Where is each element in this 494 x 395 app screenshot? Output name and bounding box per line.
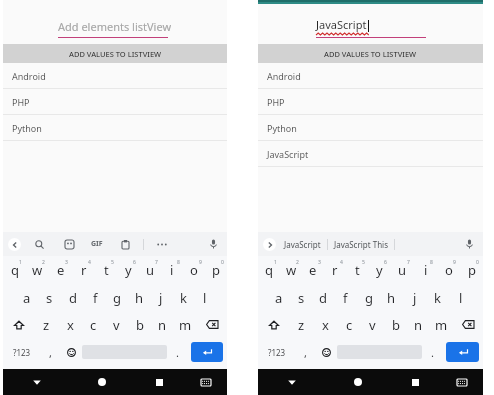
button[interactable]: b bbox=[384, 311, 407, 338]
button[interactable]: Python bbox=[258, 115, 483, 141]
button[interactable]: Backspace bbox=[197, 311, 227, 338]
button[interactable]: b bbox=[128, 311, 151, 338]
button[interactable]: JavaScript bbox=[284, 239, 321, 250]
button[interactable]: Back bbox=[258, 369, 326, 395]
button[interactable]: Enter bbox=[191, 342, 223, 362]
button[interactable]: d bbox=[312, 284, 334, 311]
button[interactable]: z bbox=[34, 311, 58, 338]
button[interactable]: r bbox=[72, 256, 95, 284]
button[interactable]: Python bbox=[3, 115, 227, 141]
button[interactable]: m bbox=[430, 311, 453, 338]
button[interactable]: Stickers bbox=[61, 236, 77, 252]
button[interactable]: x bbox=[58, 311, 82, 338]
button[interactable]: GIF bbox=[91, 239, 103, 249]
button[interactable]: j bbox=[403, 284, 426, 311]
button[interactable]: y bbox=[368, 256, 391, 284]
button[interactable]: Backspace bbox=[453, 311, 483, 338]
button[interactable]: Recents bbox=[133, 369, 185, 395]
button[interactable]: k bbox=[172, 284, 194, 311]
button[interactable]: Search bbox=[31, 236, 47, 252]
button[interactable]: Back bbox=[3, 369, 70, 395]
button[interactable]: c bbox=[337, 311, 361, 338]
button[interactable]: Shift bbox=[3, 311, 34, 338]
button[interactable]: n bbox=[151, 311, 174, 338]
button[interactable]: Clipboard bbox=[117, 236, 133, 252]
button[interactable]: w bbox=[26, 256, 49, 284]
button[interactable]: Android bbox=[258, 63, 483, 89]
button[interactable]: , bbox=[295, 338, 315, 366]
button[interactable]: p bbox=[460, 256, 483, 284]
button[interactable]: a bbox=[15, 284, 38, 311]
button[interactable]: Back bbox=[8, 238, 21, 251]
button[interactable]: l bbox=[194, 284, 216, 311]
button[interactable]: v bbox=[105, 311, 128, 338]
button[interactable]: s bbox=[290, 284, 312, 311]
button[interactable]: PHP bbox=[3, 89, 227, 115]
button[interactable]: a bbox=[268, 284, 290, 311]
button[interactable]: i bbox=[414, 256, 437, 284]
button[interactable]: g bbox=[357, 284, 380, 311]
button[interactable]: z bbox=[289, 311, 313, 338]
button[interactable]: JavaScript bbox=[258, 141, 483, 167]
button[interactable]: p bbox=[205, 256, 227, 284]
button[interactable]: Shift bbox=[258, 311, 289, 338]
button[interactable]: c bbox=[82, 311, 105, 338]
button[interactable]: Voice input bbox=[205, 236, 221, 252]
button[interactable]: Android bbox=[3, 63, 227, 89]
button[interactable]: Emoji bbox=[60, 338, 82, 366]
button[interactable]: e bbox=[302, 256, 324, 284]
button[interactable]: d bbox=[61, 284, 84, 311]
button[interactable]: h bbox=[128, 284, 150, 311]
button[interactable]: f bbox=[334, 284, 357, 311]
button[interactable]: s bbox=[38, 284, 61, 311]
button[interactable]: e bbox=[49, 256, 72, 284]
staticText: h bbox=[135, 289, 144, 307]
button[interactable]: t bbox=[346, 256, 368, 284]
button[interactable]: Home bbox=[70, 369, 133, 395]
button[interactable]: More options bbox=[154, 236, 170, 252]
button[interactable]: Keyboard bbox=[185, 369, 227, 395]
button[interactable]: k bbox=[426, 284, 449, 311]
button[interactable]: m bbox=[174, 311, 197, 338]
button[interactable]: ?123 bbox=[3, 338, 40, 366]
button[interactable]: q bbox=[258, 256, 280, 284]
button[interactable]: Voice input bbox=[461, 236, 477, 252]
button[interactable]: i bbox=[161, 256, 183, 284]
button[interactable]: o bbox=[437, 256, 460, 284]
button[interactable]: u bbox=[391, 256, 414, 284]
button[interactable]: o bbox=[183, 256, 205, 284]
button[interactable]: t bbox=[95, 256, 117, 284]
button[interactable]: Add elements listView bbox=[3, 12, 227, 38]
button[interactable]: Emoji bbox=[315, 338, 337, 366]
button[interactable]: h bbox=[380, 284, 403, 311]
button[interactable]: n bbox=[407, 311, 430, 338]
button[interactable]: x bbox=[313, 311, 337, 338]
button[interactable]: l bbox=[449, 284, 472, 311]
button[interactable]: y bbox=[117, 256, 139, 284]
button[interactable]: g bbox=[106, 284, 128, 311]
button[interactable]: q bbox=[3, 256, 26, 284]
button[interactable]: . bbox=[167, 338, 187, 366]
button[interactable]: w bbox=[280, 256, 302, 284]
staticText: y bbox=[376, 261, 383, 279]
button[interactable]: v bbox=[361, 311, 384, 338]
button[interactable]: ?123 bbox=[258, 338, 295, 366]
button[interactable]: j bbox=[150, 284, 172, 311]
button[interactable]: f bbox=[84, 284, 106, 311]
button[interactable]: r bbox=[324, 256, 346, 284]
button[interactable]: , bbox=[40, 338, 60, 366]
button[interactable]: Enter bbox=[446, 342, 479, 362]
button[interactable]: Expand suggestions bbox=[263, 238, 276, 251]
button[interactable]: . bbox=[422, 338, 442, 366]
button[interactable]: Recents bbox=[389, 369, 441, 395]
button[interactable]: PHP bbox=[258, 89, 483, 115]
button[interactable]: Home bbox=[326, 369, 389, 395]
button[interactable]: u bbox=[139, 256, 161, 284]
button[interactable]: ADD VALUES TO LISTVIEW bbox=[3, 44, 227, 63]
button[interactable]: ADD VALUES TO LISTVIEW bbox=[258, 44, 483, 63]
button[interactable]: JavaScript This bbox=[334, 239, 388, 250]
button[interactable]: Keyboard bbox=[441, 369, 483, 395]
button[interactable]: JavaScript bbox=[258, 12, 483, 38]
